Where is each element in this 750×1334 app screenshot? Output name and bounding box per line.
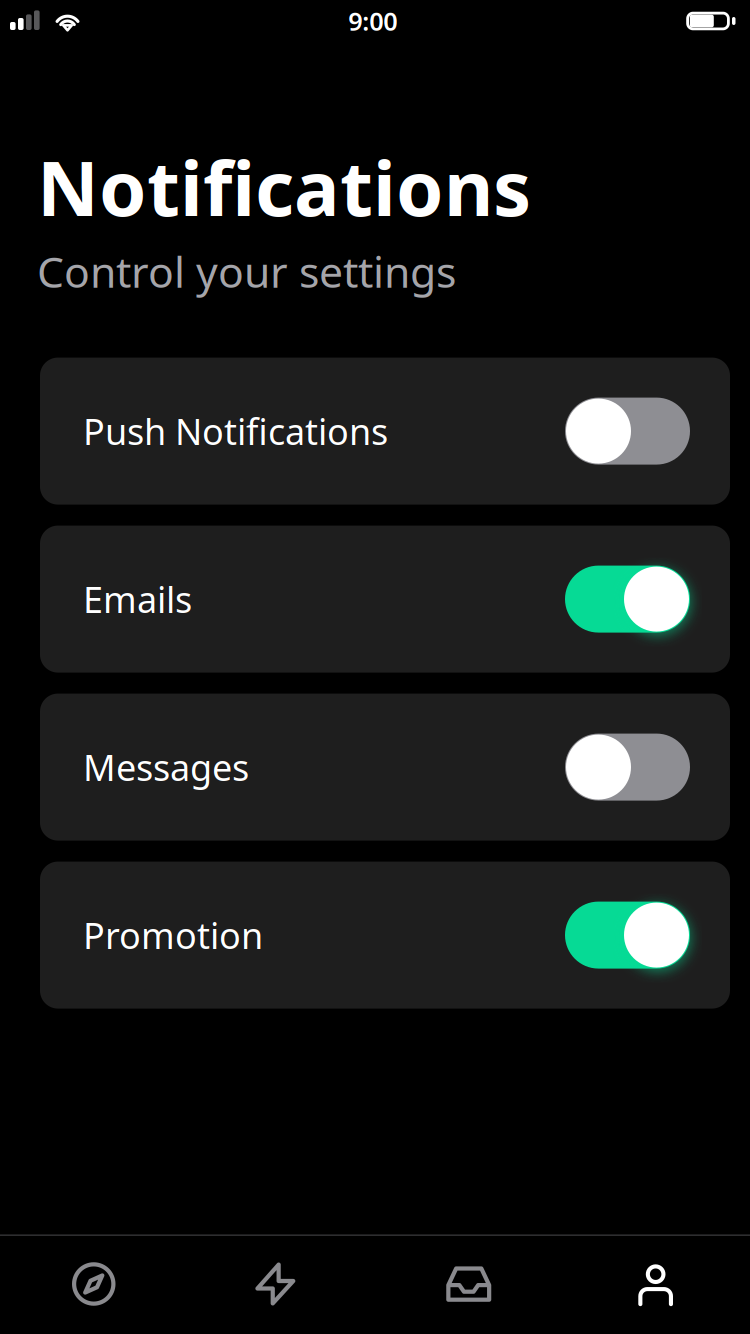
staticText: Promotion bbox=[83, 911, 263, 959]
staticText: Messages bbox=[83, 743, 249, 791]
button[interactable]: Messages bbox=[40, 694, 730, 841]
staticText: Push Notifications bbox=[83, 407, 388, 455]
button[interactable]: Activity bbox=[187, 1238, 375, 1334]
staticText: 9:00 bbox=[348, 4, 397, 38]
button[interactable]: Profile bbox=[562, 1238, 750, 1334]
staticText: Notifications bbox=[37, 136, 531, 237]
button[interactable]: Explore bbox=[0, 1238, 187, 1334]
staticText: Control your settings bbox=[37, 243, 456, 300]
button[interactable]: Promotion bbox=[40, 862, 730, 1009]
button[interactable]: Inbox bbox=[375, 1238, 562, 1334]
staticText: Emails bbox=[83, 575, 192, 623]
button[interactable]: Push Notifications bbox=[40, 358, 730, 505]
button[interactable]: Emails bbox=[40, 526, 730, 673]
